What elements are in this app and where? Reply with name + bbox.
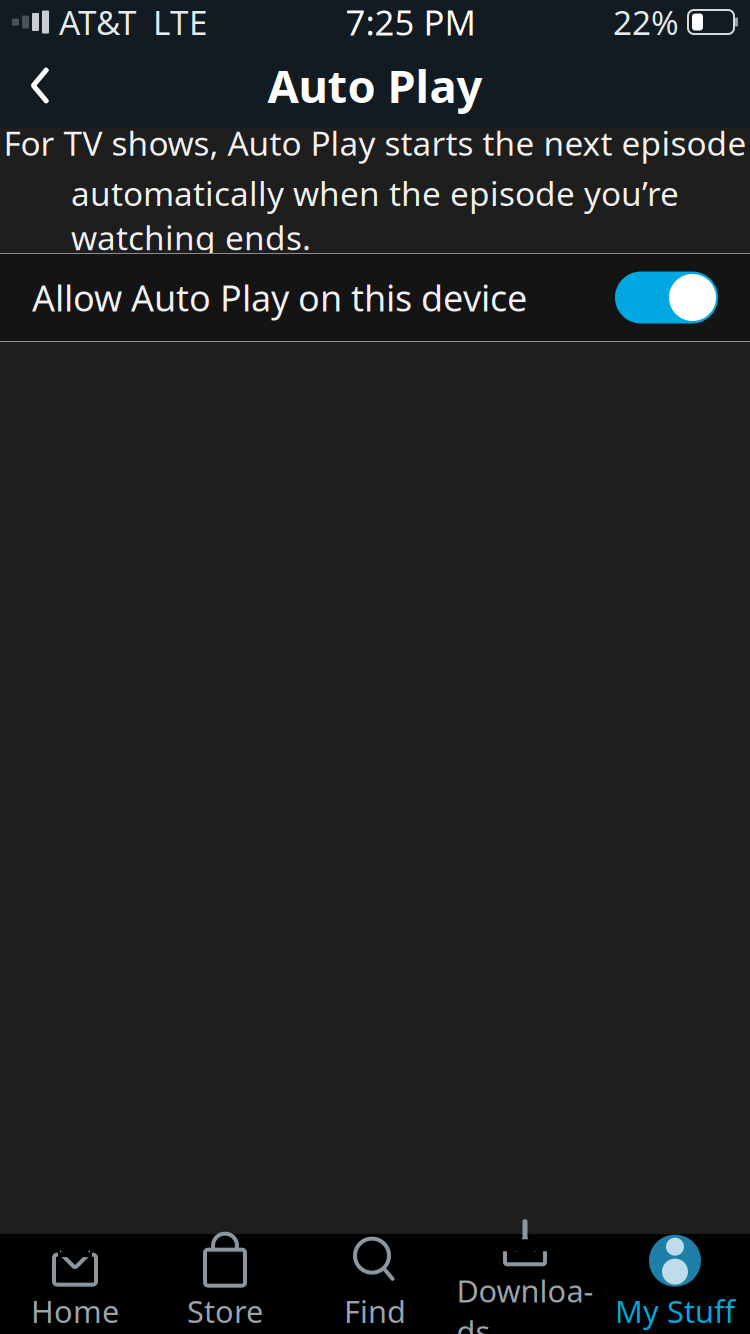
button[interactable]: Downloads xyxy=(450,1234,600,1334)
staticText: AT&T xyxy=(59,0,137,44)
staticText: Store xyxy=(187,1291,263,1331)
button[interactable]: Allow Auto Play on this device xyxy=(0,254,750,341)
staticText: For TV shows, Auto Play starts the next … xyxy=(3,121,746,165)
staticText: Allow Auto Play on this device xyxy=(32,274,527,321)
button[interactable]: Back xyxy=(0,44,80,127)
button[interactable]: My Stuff xyxy=(600,1234,750,1334)
staticText: LTE xyxy=(153,0,208,44)
button[interactable]: Allow Auto Play on this device xyxy=(615,271,718,323)
staticText: 22% xyxy=(613,0,679,44)
staticText: Downloads xyxy=(456,1270,593,1334)
staticText: My Stuff xyxy=(615,1291,735,1331)
staticText: Home xyxy=(31,1291,119,1331)
button[interactable]: Store xyxy=(150,1234,300,1334)
staticText: 7:25 PM xyxy=(345,0,475,45)
button[interactable]: Find xyxy=(300,1234,450,1334)
staticText: Auto Play xyxy=(267,55,482,116)
staticText: automatically when the episode you’re wa… xyxy=(71,171,679,259)
button[interactable]: Home xyxy=(0,1234,150,1334)
staticText: Find xyxy=(344,1291,406,1331)
